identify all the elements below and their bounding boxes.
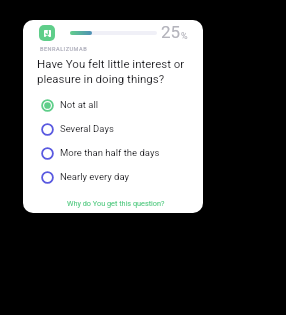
staticText: Not at all [60, 99, 99, 110]
staticText: Several Days [60, 123, 114, 134]
staticText: Have You felt little interest or pleasur… [37, 57, 189, 86]
staticText: % [181, 31, 188, 42]
staticText: BENRALIZUMAB [40, 46, 88, 53]
button[interactable]: Not at all [41, 92, 189, 116]
button[interactable]: More than half the days [41, 140, 189, 164]
button[interactable]: Why do You get this question? [61, 196, 171, 211]
button[interactable]: Medication information [39, 25, 55, 41]
button[interactable]: Nearly every day [41, 164, 189, 188]
button[interactable]: Several Days [41, 116, 189, 140]
staticText: More than half the days [60, 147, 160, 158]
staticText: Nearly every day [60, 171, 130, 182]
staticText: 25 [161, 22, 181, 42]
